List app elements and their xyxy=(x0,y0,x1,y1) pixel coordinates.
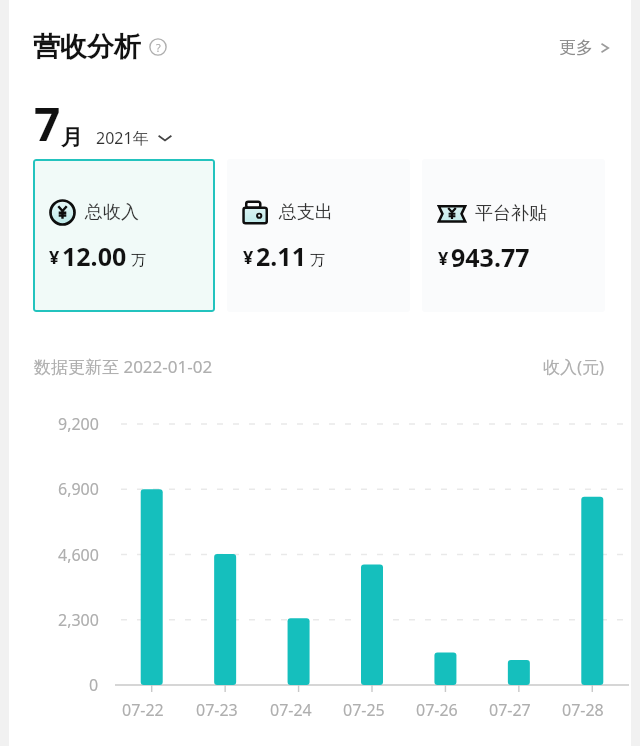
staticText: 9,200 xyxy=(58,413,99,435)
staticText: ¥ xyxy=(49,245,60,270)
staticText: 万 xyxy=(310,251,325,270)
staticText: 07-27 xyxy=(489,699,531,721)
staticText: 总支出 xyxy=(279,201,333,224)
staticText: 总收入 xyxy=(85,201,139,224)
button[interactable]: 平台补贴 xyxy=(422,159,605,312)
staticText: 07-22 xyxy=(122,699,164,721)
staticText: 07-25 xyxy=(343,699,385,721)
staticText: 2.11 xyxy=(256,239,306,273)
staticText: ¥ xyxy=(438,246,449,271)
staticText: 2021年 xyxy=(96,127,149,149)
staticText: 万 xyxy=(131,251,146,270)
staticText: 7 xyxy=(34,92,61,155)
staticText: 数据更新至 2022-01-02 xyxy=(34,355,213,378)
staticText: 6,900 xyxy=(58,478,99,500)
button[interactable]: 更多 xyxy=(559,37,610,58)
staticText: 07-24 xyxy=(270,699,312,721)
staticText: 07-23 xyxy=(196,699,238,721)
staticText: 月 xyxy=(61,124,83,152)
staticText: 平台补贴 xyxy=(475,202,547,225)
staticText: ¥ xyxy=(243,245,254,270)
staticText: 07-26 xyxy=(416,699,458,721)
staticText: 943.77 xyxy=(451,240,530,274)
staticText: ? xyxy=(156,40,161,55)
button[interactable]: 2021年 xyxy=(96,127,173,149)
button[interactable]: 总支出 xyxy=(227,159,410,312)
staticText: 0 xyxy=(89,674,99,696)
button[interactable]: Help xyxy=(149,38,167,56)
staticText: 营收分析 xyxy=(33,30,141,64)
staticText: 收入(元) xyxy=(543,355,605,378)
staticText: 4,600 xyxy=(58,544,99,566)
staticText: 07-28 xyxy=(562,699,604,721)
button[interactable]: 总收入 xyxy=(33,159,215,312)
staticText: 12.00 xyxy=(62,239,127,273)
staticText: 更多 xyxy=(559,37,593,58)
staticText: 2,300 xyxy=(58,609,99,631)
